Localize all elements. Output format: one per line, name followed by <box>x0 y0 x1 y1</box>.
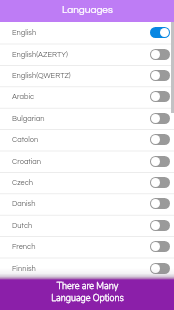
staticText: Croatian <box>12 158 42 166</box>
staticText: Arabic <box>12 93 34 101</box>
button[interactable]: French <box>0 236 174 257</box>
button[interactable]: Arabic <box>0 86 174 107</box>
button[interactable]: Croatian <box>0 151 174 172</box>
staticText: There are Many Language Options <box>51 280 124 304</box>
staticText: Finnish <box>12 265 36 273</box>
staticText: Catolon <box>12 136 39 144</box>
button[interactable]: Toggle Arabic keyboard <box>150 91 170 102</box>
button[interactable]: Toggle English(QWERTZ) keyboard <box>150 70 170 81</box>
button[interactable]: Czech <box>0 172 174 193</box>
staticText: English(AZERTY) <box>12 51 68 59</box>
staticText: Languages <box>62 5 113 15</box>
staticText: English <box>12 29 37 37</box>
staticText: Danish <box>12 200 36 208</box>
button[interactable]: Toggle Croatian keyboard <box>150 156 170 167</box>
button[interactable]: Catolon <box>0 129 174 150</box>
button[interactable]: Toggle English(AZERTY) keyboard <box>150 49 170 60</box>
button[interactable]: Toggle Catolon keyboard <box>150 134 170 145</box>
button[interactable]: There are Many Language Options <box>0 280 174 310</box>
button[interactable]: Toggle Danish keyboard <box>150 198 170 209</box>
button[interactable]: Danish <box>0 193 174 214</box>
button[interactable]: Finnish <box>0 258 174 279</box>
button[interactable]: English(AZERTY) <box>0 44 174 65</box>
staticText: French <box>12 243 36 251</box>
button[interactable]: English <box>0 22 174 43</box>
staticText: Czech <box>12 179 34 187</box>
button[interactable]: Toggle Czech keyboard <box>150 177 170 188</box>
button[interactable]: Toggle French keyboard <box>150 241 170 252</box>
staticText: Dutch <box>12 222 33 230</box>
button[interactable]: Dutch <box>0 215 174 236</box>
button[interactable]: Bulgarian <box>0 108 174 129</box>
button[interactable]: Toggle Finnish keyboard <box>150 263 170 274</box>
staticText: English(QWERTZ) <box>12 72 71 80</box>
button[interactable]: English(QWERTZ) <box>0 65 174 86</box>
button[interactable]: Toggle English keyboard <box>150 27 170 38</box>
button[interactable]: Toggle Bulgarian keyboard <box>150 113 170 124</box>
button[interactable]: Toggle Dutch keyboard <box>150 220 170 231</box>
staticText: Bulgarian <box>12 115 45 123</box>
